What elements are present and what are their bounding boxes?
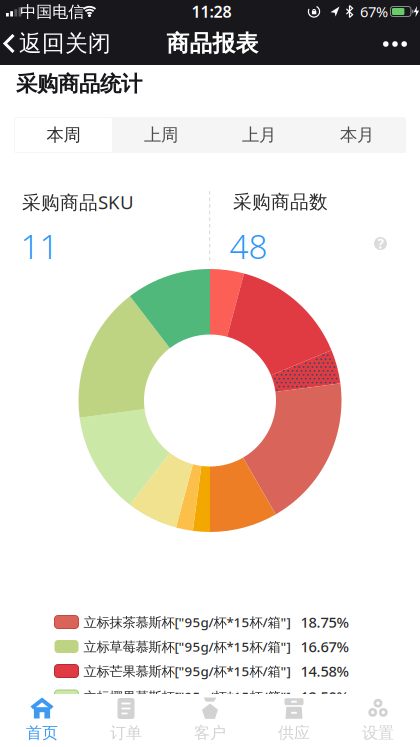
staticText: ?	[377, 235, 383, 252]
button[interactable]: 订单	[84, 697, 168, 743]
button[interactable]: 本周	[15, 118, 112, 152]
staticText: 立标椰果慕斯杯["95g/杯*15杯/箱"]	[83, 688, 290, 705]
button[interactable]: 设置	[336, 697, 420, 743]
button[interactable]: 立标抹茶慕斯杯["95g/杯*15杯/箱"]	[54, 612, 348, 632]
staticText: 67%	[360, 2, 388, 21]
staticText: 11:28	[191, 1, 231, 22]
staticText: 客户	[194, 723, 226, 743]
staticText: 立标草莓慕斯杯["95g/杯*15杯/箱"]	[83, 638, 290, 655]
button[interactable]: 返回	[3, 30, 65, 57]
staticText: 关闭	[65, 30, 111, 57]
staticText: 48	[229, 224, 267, 268]
staticText: 上周	[144, 124, 178, 146]
staticText: 返回	[19, 30, 65, 57]
staticText: 首页	[26, 723, 58, 743]
staticText: 订单	[110, 723, 142, 743]
button[interactable]: 首页	[0, 697, 84, 743]
staticText: 中国电信	[20, 2, 84, 22]
staticText: 采购商品统计	[16, 71, 142, 97]
button[interactable]: 上月	[210, 118, 307, 152]
button[interactable]: 本月	[308, 118, 405, 152]
staticText: 本月	[340, 124, 374, 146]
staticText: 设置	[362, 723, 394, 743]
staticText: 14.58%	[300, 661, 348, 681]
button[interactable]: 立标椰果慕斯杯["95g/杯*15杯/箱"]	[54, 687, 348, 706]
button[interactable]: 立标草莓慕斯杯["95g/杯*15杯/箱"]	[54, 637, 348, 656]
staticText: 立标抹茶慕斯杯["95g/杯*15杯/箱"]	[83, 613, 290, 631]
button[interactable]: 关闭	[65, 30, 111, 57]
button[interactable]: 上周	[112, 118, 209, 152]
button[interactable]: 客户	[168, 697, 252, 743]
button[interactable]: 帮助	[374, 235, 387, 252]
staticText: 11	[20, 224, 58, 268]
staticText: 商品报表	[166, 30, 258, 57]
staticText: 采购商品SKU	[22, 190, 134, 214]
staticText: 16.67%	[300, 637, 348, 656]
button[interactable]: 立标芒果慕斯杯["95g/杯*15杯/箱"]	[54, 661, 348, 681]
button[interactable]: 供应	[252, 697, 336, 743]
staticText: 本周	[46, 124, 80, 146]
staticText: 采购商品数	[233, 190, 328, 213]
staticText: 立标芒果慕斯杯["95g/杯*15杯/箱"]	[83, 662, 290, 680]
button[interactable]: 更多	[383, 41, 407, 47]
staticText: 18.75%	[300, 612, 348, 632]
staticText: 供应	[278, 723, 310, 743]
staticText: 12.50%	[300, 687, 348, 706]
staticText: 上月	[242, 124, 276, 146]
